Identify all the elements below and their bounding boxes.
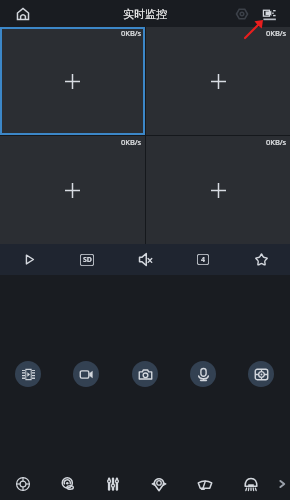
button[interactable]: Camera channel [146, 136, 290, 244]
staticText: SD [83, 255, 92, 265]
button[interactable]: Wiper [182, 467, 228, 500]
staticText: 0KB/s [121, 137, 142, 147]
button[interactable]: Settings [233, 5, 251, 23]
button[interactable]: Camera channel [0, 27, 145, 135]
button[interactable]: PTZ control [248, 361, 274, 387]
button[interactable]: Camera channel [0, 136, 145, 244]
button[interactable]: Four split screen [174, 244, 232, 275]
button[interactable]: More options [274, 467, 290, 500]
button[interactable]: Radar [45, 467, 90, 500]
staticText: 0KB/s [266, 28, 287, 38]
staticText: 4 [201, 255, 206, 265]
button[interactable]: Take snapshot [132, 361, 158, 387]
button[interactable]: Record video [73, 361, 99, 387]
button[interactable]: Playback [15, 361, 41, 387]
button[interactable]: Favorite [232, 244, 290, 275]
button[interactable]: Adjustments [90, 467, 136, 500]
staticText: 0KB/s [266, 137, 287, 147]
button[interactable]: Locate [136, 467, 182, 500]
button[interactable]: Home [11, 2, 35, 26]
button[interactable]: Play [0, 244, 58, 275]
button[interactable]: Devices [262, 5, 280, 23]
button[interactable]: Camera channel [146, 27, 290, 135]
button[interactable]: Drive mode [0, 467, 45, 500]
staticText: 实时监控 [123, 7, 167, 21]
staticText: 0KB/s [121, 28, 142, 38]
button[interactable]: Microphone [190, 361, 216, 387]
button[interactable]: Mute [116, 244, 174, 275]
button[interactable]: Stream quality standard definition [58, 244, 116, 275]
button[interactable]: Lights [228, 467, 274, 500]
